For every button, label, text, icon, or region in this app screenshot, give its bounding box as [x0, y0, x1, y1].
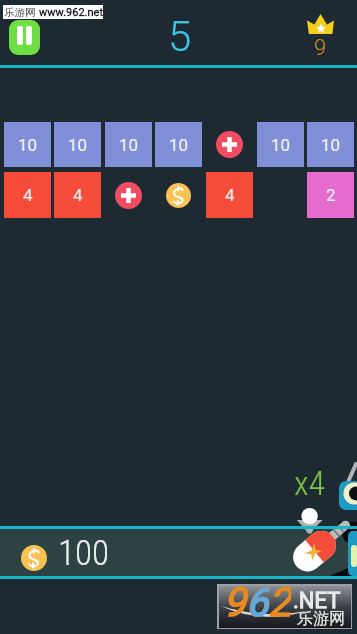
staticText: 5: [168, 12, 192, 60]
button[interactable]: 10: [105, 122, 152, 167]
staticText: 10: [18, 135, 38, 155]
staticText: 6: [246, 579, 269, 624]
staticText: 10: [68, 135, 88, 155]
button[interactable]: 4: [54, 172, 101, 218]
button[interactable]: 10: [4, 122, 51, 167]
staticText: 10: [271, 135, 291, 155]
staticText: 962: [223, 579, 291, 624]
button[interactable]: Pause: [9, 20, 40, 55]
staticText: 10: [321, 135, 341, 155]
staticText: 10: [119, 135, 139, 155]
button[interactable]: Extra ball power-up: [115, 182, 142, 209]
button[interactable]: 100: [21, 530, 116, 572]
staticText: 4: [23, 185, 33, 205]
staticText: .NET: [293, 588, 341, 614]
staticText: x4: [294, 463, 326, 495]
button[interactable]: Extra ball power-up: [216, 131, 243, 158]
button[interactable]: 10: [54, 122, 101, 167]
button[interactable]: 4: [206, 172, 253, 218]
button[interactable]: Crowns: [303, 11, 338, 57]
button[interactable]: 2: [307, 172, 354, 218]
staticText: 4: [73, 185, 83, 205]
staticText: www.962.net: [39, 6, 103, 19]
staticText: 乐游网: [4, 6, 36, 19]
staticText: 2: [326, 185, 336, 205]
button[interactable]: 10: [155, 122, 202, 167]
button[interactable]: 4: [4, 172, 51, 218]
button[interactable]: 10: [307, 122, 354, 167]
staticText: 10: [169, 135, 189, 155]
staticText: 100: [58, 533, 110, 574]
staticText: 9: [314, 35, 327, 57]
staticText: 乐游网: [297, 609, 345, 629]
button[interactable]: 10: [257, 122, 304, 167]
button[interactable]: Coin: [166, 183, 191, 208]
staticText: 4: [225, 185, 235, 205]
